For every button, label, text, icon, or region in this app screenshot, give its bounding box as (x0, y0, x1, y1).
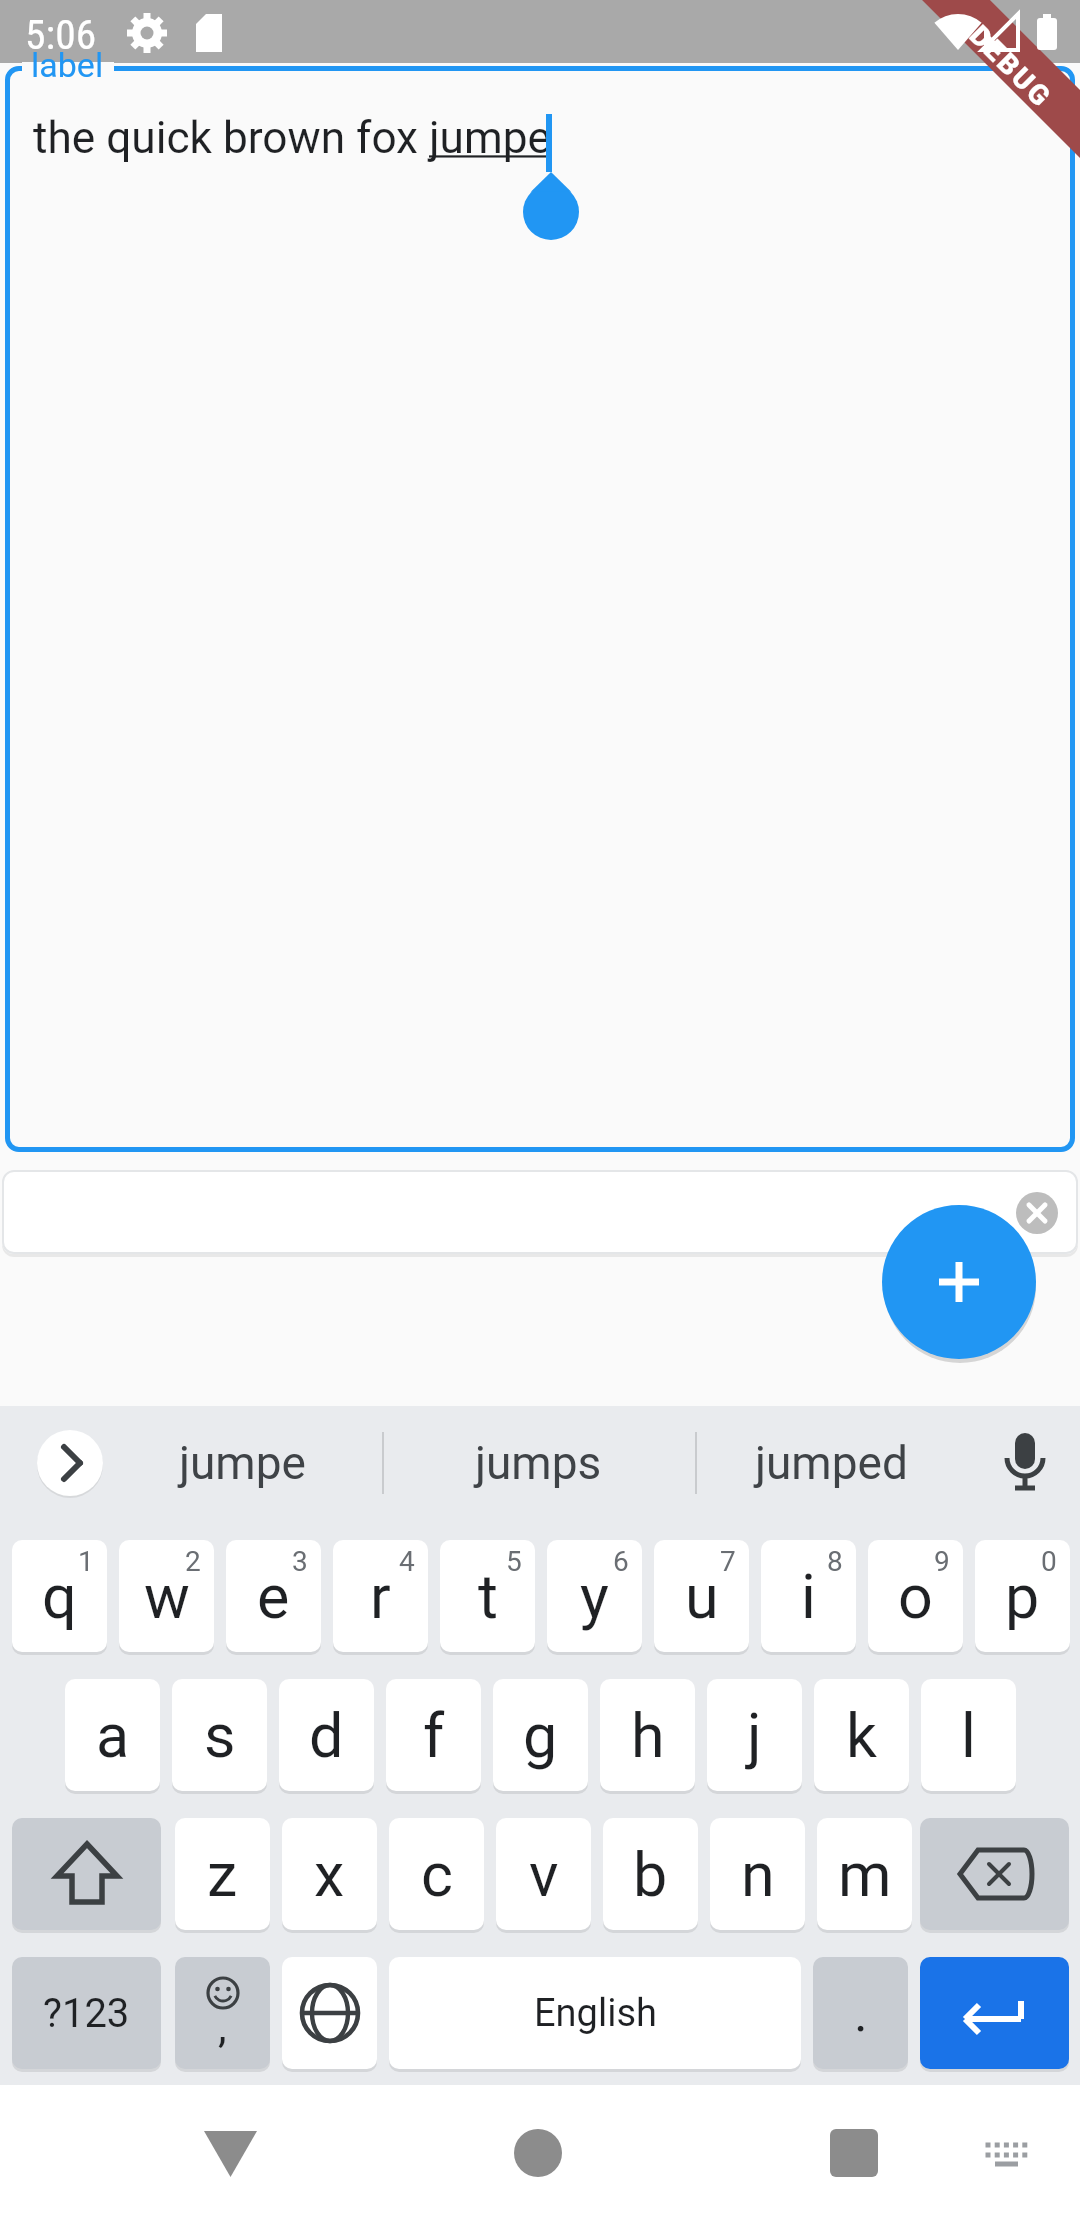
button[interactable] (2, 1170, 1078, 1254)
staticText: j (747, 1700, 762, 1771)
staticText: jumps (475, 1436, 602, 1490)
button[interactable]: t (440, 1540, 535, 1652)
staticText: t (478, 1561, 498, 1632)
button[interactable] (882, 1205, 1036, 1359)
button[interactable] (37, 1430, 103, 1496)
button[interactable]: a (65, 1679, 160, 1791)
button[interactable]: f (386, 1679, 481, 1791)
staticText: 6 (613, 1545, 629, 1578)
staticText: , (218, 2001, 227, 2053)
staticText: label (31, 45, 104, 85)
staticText: b (633, 1839, 668, 1910)
button[interactable]: e (226, 1540, 321, 1652)
button[interactable]: jumps (418, 1430, 658, 1496)
button[interactable] (282, 1957, 377, 2069)
staticText: i (801, 1561, 816, 1632)
button[interactable] (180, 2105, 280, 2205)
staticText: 9 (934, 1545, 950, 1578)
button[interactable]: , (175, 1957, 270, 2069)
button[interactable]: g (493, 1679, 588, 1791)
staticText: ?123 (43, 1990, 130, 2037)
button[interactable]: c (389, 1818, 484, 1930)
button[interactable]: i (761, 1540, 856, 1652)
staticText: r (370, 1561, 391, 1632)
button[interactable]: l (921, 1679, 1016, 1791)
staticText: o (898, 1561, 933, 1632)
button[interactable]: s (172, 1679, 267, 1791)
button[interactable]: y (547, 1540, 642, 1652)
staticText: 5 (506, 1545, 522, 1578)
staticText: x (314, 1839, 345, 1910)
button[interactable]: u (654, 1540, 749, 1652)
staticText: 1 (78, 1545, 94, 1578)
button[interactable]: p (975, 1540, 1070, 1652)
button[interactable]: . (813, 1957, 908, 2069)
staticText: . (854, 1983, 868, 2044)
button[interactable]: k (814, 1679, 909, 1791)
staticText: m (838, 1839, 892, 1910)
staticText: English (534, 1991, 657, 2036)
button[interactable] (5, 66, 1075, 1152)
button[interactable] (920, 1818, 1069, 1930)
button[interactable]: q (12, 1540, 107, 1652)
button[interactable]: x (282, 1818, 377, 1930)
staticText: DEBUG (963, 19, 1059, 115)
button[interactable] (490, 2105, 590, 2205)
button[interactable]: w (119, 1540, 214, 1652)
staticText: k (846, 1700, 877, 1771)
button[interactable]: English (389, 1957, 801, 2069)
staticText: jumped (755, 1436, 908, 1490)
button[interactable]: jumpe (122, 1430, 362, 1496)
staticText: 8 (827, 1545, 843, 1578)
staticText: l (961, 1700, 976, 1771)
button[interactable]: z (175, 1818, 270, 1930)
staticText: w (144, 1561, 190, 1632)
staticText: jumpe (179, 1436, 306, 1490)
staticText: 0 (1041, 1545, 1057, 1578)
staticText: z (207, 1839, 238, 1910)
button[interactable]: o (868, 1540, 963, 1652)
button[interactable]: d (279, 1679, 374, 1791)
staticText: 2 (185, 1545, 201, 1578)
button[interactable] (805, 2105, 905, 2205)
staticText: c (421, 1839, 453, 1910)
staticText: u (685, 1561, 719, 1632)
staticText: f (423, 1700, 445, 1771)
staticText: p (1005, 1561, 1040, 1632)
button[interactable]: j (707, 1679, 802, 1791)
staticText: y (580, 1561, 609, 1632)
button[interactable]: r (333, 1540, 428, 1652)
button[interactable]: jumped (711, 1430, 951, 1496)
staticText: n (741, 1839, 775, 1910)
button[interactable]: n (710, 1818, 805, 1930)
staticText: 5:06 (25, 10, 97, 59)
staticText: a (96, 1700, 130, 1771)
staticText: 3 (292, 1545, 308, 1578)
staticText: h (631, 1700, 665, 1771)
button[interactable] (955, 2105, 1055, 2205)
button[interactable]: ?123 (12, 1957, 161, 2069)
button[interactable] (920, 1957, 1069, 2069)
staticText: g (523, 1700, 558, 1771)
staticText: 4 (399, 1545, 415, 1578)
staticText: v (529, 1839, 559, 1910)
staticText: q (42, 1561, 77, 1632)
button[interactable] (12, 1818, 161, 1930)
staticText: d (309, 1700, 344, 1771)
button[interactable] (1016, 1192, 1058, 1234)
button[interactable]: v (496, 1818, 591, 1930)
staticText: s (204, 1700, 236, 1771)
button[interactable]: m (817, 1818, 912, 1930)
button[interactable]: h (600, 1679, 695, 1791)
staticText: the quick brown fox jumpe (33, 112, 551, 164)
button[interactable] (995, 1430, 1055, 1496)
staticText: e (257, 1561, 290, 1632)
button[interactable]: b (603, 1818, 698, 1930)
staticText: 7 (720, 1545, 736, 1578)
